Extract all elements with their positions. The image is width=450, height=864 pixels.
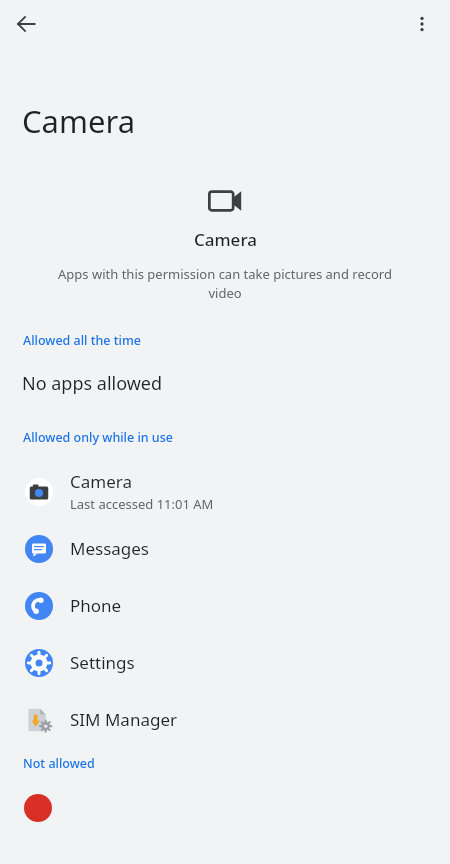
staticText: Settings <box>70 651 135 674</box>
staticText: Allowed only while in use <box>23 429 173 446</box>
button[interactable]: Messages <box>0 520 450 577</box>
staticText: Messages <box>70 537 150 560</box>
staticText: Apps with this permission can take pictu… <box>46 265 404 302</box>
staticText: SIM Manager <box>70 708 177 731</box>
button[interactable]: Back <box>6 4 46 44</box>
button[interactable]: More options <box>402 4 442 44</box>
button[interactable]: Settings <box>0 634 450 691</box>
button[interactable] <box>0 794 450 834</box>
staticText: Allowed all the time <box>23 332 141 349</box>
staticText: Camera <box>194 228 257 251</box>
button[interactable]: Phone <box>0 577 450 634</box>
staticText: Not allowed <box>23 755 95 772</box>
staticText: Last accessed 11:01 AM <box>70 495 214 513</box>
button[interactable]: SIM Manager <box>0 691 450 748</box>
button[interactable]: Camera <box>0 463 450 520</box>
staticText: Camera <box>70 470 132 493</box>
staticText: Phone <box>70 594 122 617</box>
staticText: Camera <box>22 100 136 142</box>
staticText: No apps allowed <box>22 371 163 396</box>
